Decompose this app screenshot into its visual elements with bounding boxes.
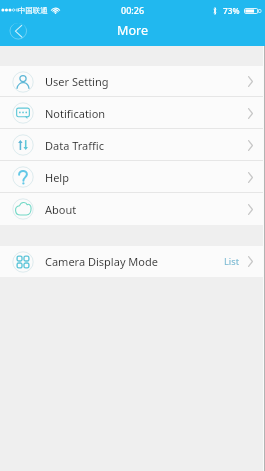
staticText: 00:26 (121, 4, 145, 16)
staticText: Data Traffic (45, 138, 104, 153)
button[interactable]: About (0, 193, 265, 225)
staticText: Notification (45, 106, 106, 121)
button[interactable]: Camera Display Mode (0, 246, 265, 277)
button[interactable]: Notification (0, 97, 265, 129)
button[interactable]: Help (0, 161, 265, 193)
button[interactable]: User Setting (0, 66, 265, 97)
staticText: Camera Display Mode (45, 254, 158, 269)
button[interactable]: Back (8, 23, 28, 43)
staticText: 73% (223, 5, 240, 16)
staticText: Help (45, 170, 69, 185)
staticText: More (117, 22, 149, 39)
staticText: List (224, 255, 240, 268)
staticText: About (45, 202, 77, 217)
staticText: 中国联通 (18, 6, 48, 15)
staticText: User Setting (45, 74, 109, 89)
button[interactable]: Data Traffic (0, 129, 265, 161)
